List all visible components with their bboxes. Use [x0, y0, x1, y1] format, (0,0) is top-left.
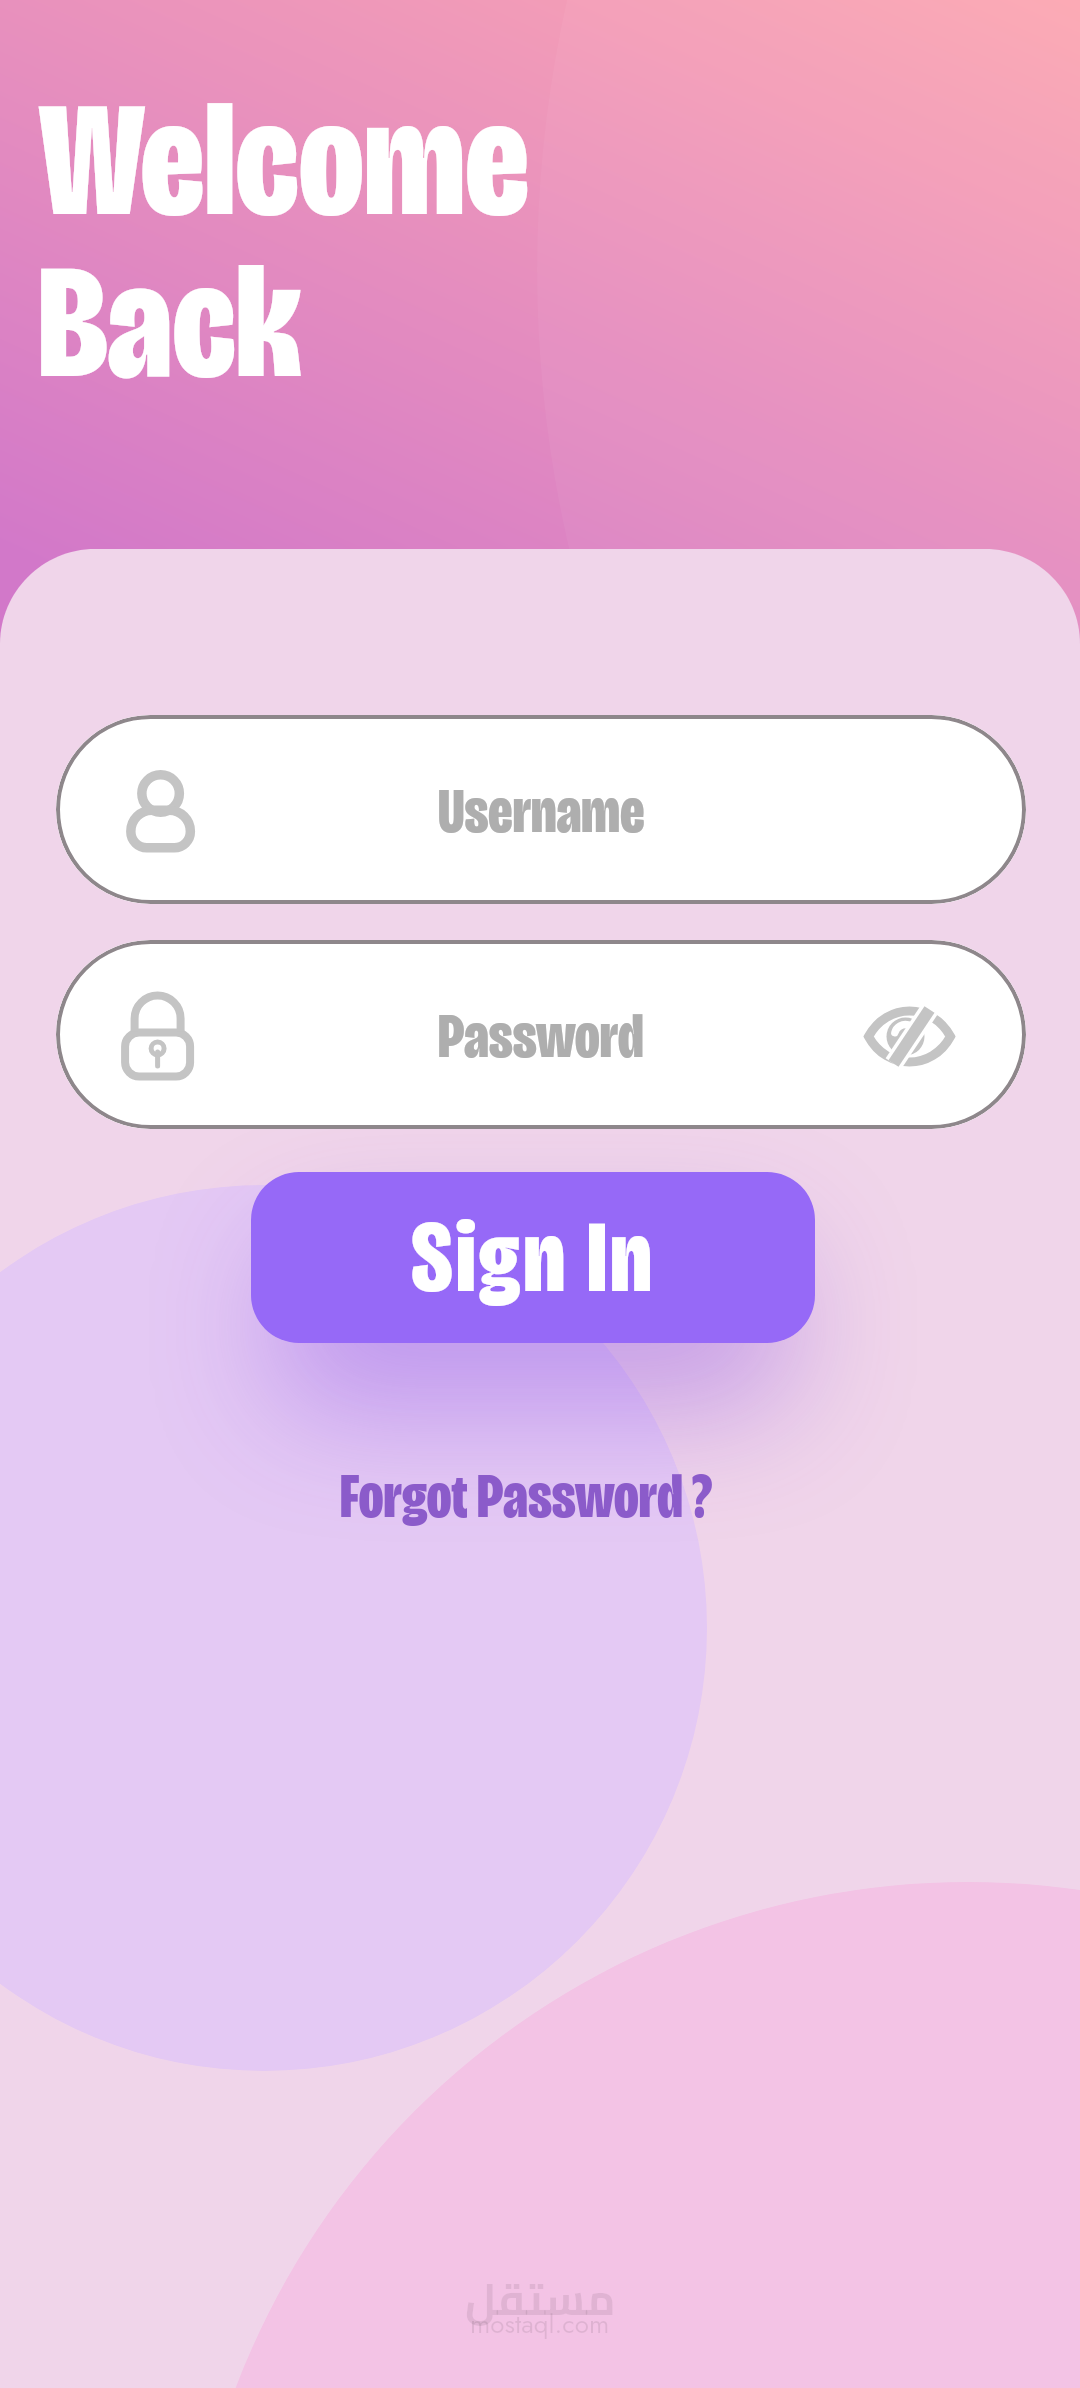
staticText: mostaql.com	[470, 2305, 610, 2343]
button[interactable]: Show password	[835, 960, 984, 1109]
button[interactable]: Forgot Password ?	[306, 1455, 746, 1537]
staticText: Welcome Back	[38, 63, 530, 420]
button[interactable]: Sign In	[251, 1172, 815, 1343]
staticText: Sign In	[411, 1197, 656, 1318]
staticText: Password	[438, 999, 644, 1073]
staticText: Username	[438, 774, 645, 848]
button[interactable]: Username	[56, 715, 1026, 904]
staticText: مستقل	[465, 2258, 616, 2328]
staticText: Forgot Password ?	[340, 1459, 712, 1533]
button[interactable]: Password	[56, 940, 1026, 1129]
